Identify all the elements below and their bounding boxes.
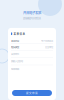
staticText: 发票抬头 [11,52,19,55]
staticText: 接收邮箱 [11,67,19,70]
staticText: 电子普通发票 [41,39,53,42]
staticText: 开具电子发票 [23,10,41,15]
staticText: 发票信息 [13,32,25,36]
staticText: 发票类型 [11,39,19,42]
staticText: 企业单位 [45,45,53,49]
button[interactable]: 提交申请 [12,90,52,96]
staticText: 抬头类型 [11,45,19,49]
staticText: 提交申请 [26,91,38,95]
staticText: 请准确填写开票信息 [23,17,41,20]
staticText: 纳税人识别号 [11,60,23,63]
